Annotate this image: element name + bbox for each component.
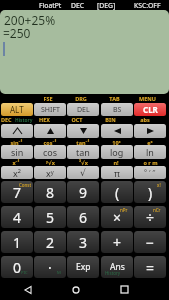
button[interactable]: Right	[134, 124, 166, 138]
button[interactable]: Back	[12, 279, 44, 300]
button[interactable]: 7	[1, 181, 33, 203]
staticText: SHIFT	[41, 105, 60, 115]
staticText: xʸ	[46, 167, 54, 179]
staticText: KSC:OFF	[134, 1, 161, 10]
button[interactable]: 6	[67, 206, 99, 228]
staticText: M	[57, 270, 61, 276]
staticText: sin⁻¹	[10, 139, 23, 146]
button[interactable]: Recents	[108, 279, 140, 300]
button[interactable]: Page up	[1, 124, 33, 138]
staticText: ln	[146, 146, 154, 158]
staticText: =	[146, 258, 155, 277]
button[interactable]: ° ′ ″	[134, 166, 166, 179]
staticText: Ans	[110, 261, 125, 273]
staticText: nPr	[120, 207, 128, 213]
button[interactable]: π	[101, 166, 133, 179]
staticText: OCT	[71, 116, 83, 123]
staticText: ° ′ ″	[144, 168, 156, 178]
button[interactable]: Down	[67, 124, 99, 138]
staticText: π	[114, 167, 120, 179]
staticText: [DEG]	[97, 1, 116, 10]
staticText: DEL	[77, 105, 90, 115]
button[interactable]: cos	[34, 145, 66, 159]
button[interactable]: Left	[101, 124, 133, 138]
staticText: tan	[76, 146, 90, 158]
button[interactable]: −	[134, 231, 166, 253]
button[interactable]: 8	[34, 181, 66, 203]
staticText: )	[148, 183, 153, 202]
staticText: HEX	[39, 116, 50, 123]
button[interactable]: sin	[1, 145, 33, 159]
staticText: cos⁻¹	[43, 139, 57, 146]
button[interactable]: log	[101, 145, 133, 159]
staticText: ×	[113, 208, 122, 227]
staticText: +	[113, 233, 122, 252]
staticText: FSE	[43, 95, 53, 102]
button[interactable]: 5	[34, 206, 66, 228]
staticText: MENU	[139, 95, 156, 102]
staticText: eˣ	[147, 139, 153, 146]
staticText: x⁻¹	[12, 159, 20, 166]
button[interactable]: tan	[67, 145, 99, 159]
staticText: ÷	[146, 208, 155, 227]
button[interactable]: =	[134, 256, 166, 278]
button[interactable]: Ans	[101, 256, 133, 278]
button[interactable]: )	[134, 181, 166, 203]
staticText: TAB	[109, 95, 120, 102]
button[interactable]: BS	[101, 103, 133, 116]
button[interactable]: Exp	[67, 256, 99, 278]
button[interactable]: 4	[1, 206, 33, 228]
staticText: o r m	[143, 159, 158, 166]
staticText: DEC	[71, 1, 85, 10]
staticText: x!	[157, 182, 161, 188]
button[interactable]: 1	[1, 231, 33, 253]
button[interactable]: 0	[1, 256, 33, 278]
button[interactable]: ln	[134, 145, 166, 159]
button[interactable]: √	[67, 166, 99, 179]
button[interactable]: Home	[60, 279, 92, 300]
button[interactable]: DEL	[67, 103, 99, 116]
button[interactable]: 9	[67, 181, 99, 203]
staticText: −	[146, 233, 155, 252]
staticText: 6	[79, 208, 88, 227]
staticText: BS	[113, 105, 122, 115]
staticText: DEC	[1, 116, 12, 123]
staticText: 3	[79, 233, 88, 252]
button[interactable]: SHIFT	[34, 103, 66, 116]
staticText: =250	[3, 25, 31, 41]
staticText: tan⁻¹	[76, 139, 90, 146]
staticText: (	[115, 183, 120, 202]
button[interactable]: ALT	[1, 103, 33, 116]
button[interactable]: CLR	[134, 103, 166, 116]
button[interactable]: 2	[34, 231, 66, 253]
button[interactable]: 3	[67, 231, 99, 253]
button[interactable]: ×	[101, 206, 133, 228]
button[interactable]: Up	[34, 124, 66, 138]
staticText: Exp	[76, 261, 91, 273]
staticText: 2	[46, 233, 55, 252]
staticText: 9	[79, 183, 88, 202]
staticText: History	[15, 117, 33, 124]
staticText: ³√x	[79, 159, 88, 166]
staticText: 200+25%	[4, 12, 56, 28]
button[interactable]: +	[101, 231, 133, 253]
staticText: ALT	[10, 104, 24, 115]
staticText: 10ˣ	[112, 139, 121, 146]
staticText: BIN	[105, 116, 116, 123]
staticText: 0	[13, 258, 22, 277]
staticText: cos	[43, 146, 58, 158]
button[interactable]: ·	[34, 256, 66, 278]
staticText: CLR	[143, 104, 158, 115]
staticText: 7	[13, 183, 22, 202]
staticText: 1	[13, 233, 22, 252]
staticText: nCr	[153, 207, 161, 213]
button[interactable]: ÷	[134, 206, 166, 228]
staticText: log	[110, 146, 124, 158]
button[interactable]: xʸ	[34, 166, 66, 179]
button[interactable]: (	[101, 181, 133, 203]
staticText: 4	[13, 208, 22, 227]
button[interactable]: x²	[1, 166, 33, 179]
staticText: FloatPt	[39, 1, 62, 10]
staticText: Const	[19, 182, 32, 188]
staticText: sin	[11, 146, 24, 158]
